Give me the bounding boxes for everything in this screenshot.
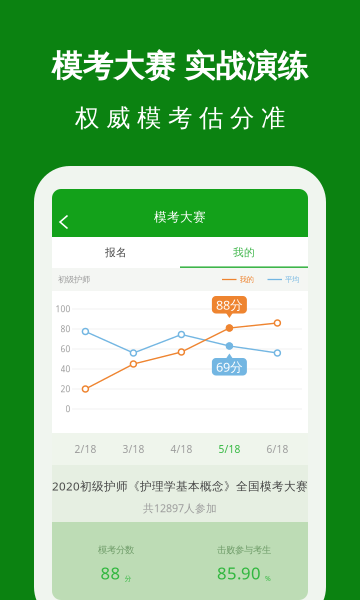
staticText: 3/18: [122, 442, 144, 456]
staticText: %: [265, 573, 271, 583]
staticText: 模考分数: [98, 544, 134, 556]
button[interactable]: 我的: [180, 237, 308, 268]
staticText: 模考大赛 实战演练: [51, 47, 308, 86]
staticText: 共12897人参加: [143, 501, 217, 515]
button[interactable]: 报名: [52, 237, 180, 268]
staticText: 6/18: [266, 442, 288, 456]
staticText: 69分: [216, 358, 243, 375]
staticText: 5/18: [218, 442, 240, 456]
staticText: 我的: [233, 246, 255, 259]
staticText: 初级护师: [58, 274, 90, 285]
button[interactable]: Back: [49, 208, 77, 236]
staticText: 60: [60, 343, 70, 355]
staticText: 我的: [239, 275, 253, 284]
staticText: 平均: [285, 275, 299, 284]
staticText: 20: [60, 383, 70, 395]
staticText: 分: [124, 574, 131, 583]
staticText: 4/18: [170, 442, 192, 456]
staticText: 权 威 模 考 估 分 准: [75, 103, 285, 133]
staticText: 2/18: [74, 442, 96, 456]
staticText: 85.90: [217, 562, 261, 584]
staticText: 88: [100, 562, 120, 584]
staticText: 2020初级护师《护理学基本概念》全国模考大赛: [52, 478, 308, 494]
staticText: 40: [60, 363, 70, 375]
staticText: 88分: [216, 296, 243, 313]
staticText: 100: [55, 303, 70, 315]
staticText: 80: [60, 323, 70, 335]
staticText: 报名: [105, 246, 127, 259]
staticText: 模考大赛: [154, 209, 206, 225]
staticText: 0: [65, 403, 70, 415]
staticText: 击败参与考生: [217, 544, 271, 556]
